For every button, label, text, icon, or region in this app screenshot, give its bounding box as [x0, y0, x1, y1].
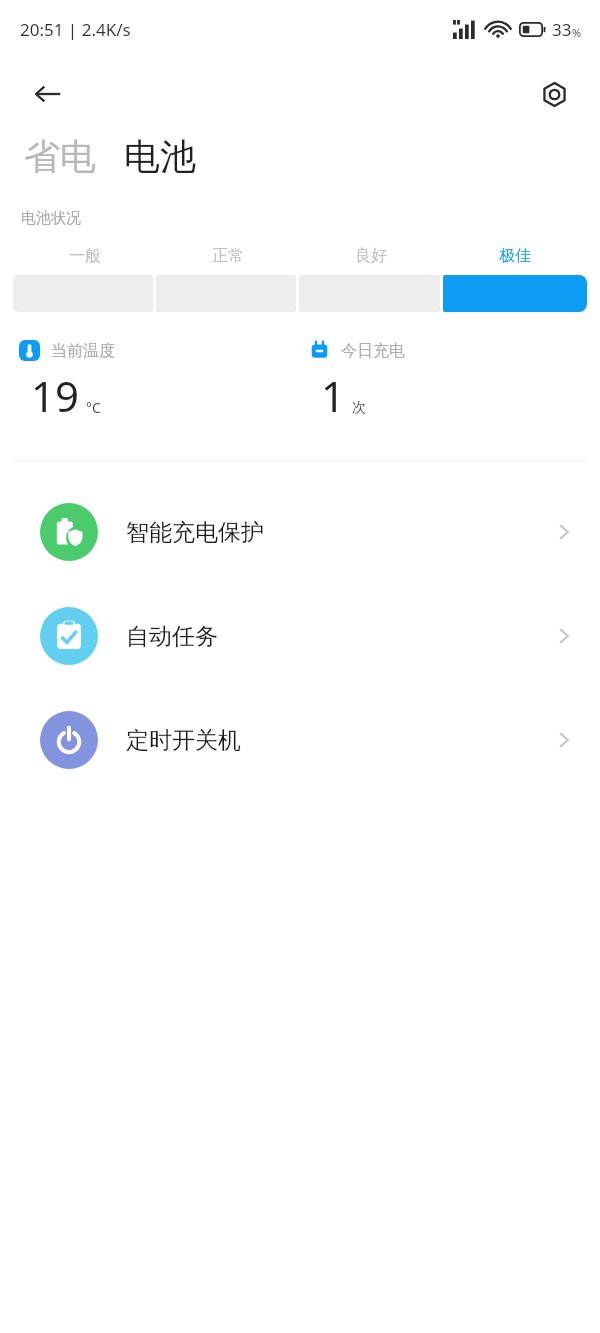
staticText: 自动任务	[126, 622, 554, 651]
staticText: 当前温度	[51, 341, 115, 361]
staticText: 正常	[212, 246, 244, 266]
staticText: 33	[552, 18, 572, 41]
staticText: 1	[321, 367, 346, 424]
button[interactable]	[443, 275, 587, 312]
button[interactable]: Back	[24, 70, 72, 118]
staticText: 20:51 | 2.4K/s	[20, 18, 131, 41]
staticText: 19	[31, 367, 80, 424]
staticText: 智能充电保护	[126, 518, 554, 547]
button[interactable]: 智能充电保护	[0, 480, 600, 584]
button[interactable]: Settings	[530, 70, 578, 118]
button[interactable]: 自动任务	[0, 584, 600, 688]
staticText: %	[572, 25, 582, 40]
button[interactable]: 定时开关机	[0, 688, 600, 792]
staticText: 良好	[355, 246, 387, 266]
staticText: °C	[86, 398, 101, 417]
button[interactable]: 省电	[20, 130, 100, 183]
staticText: 定时开关机	[126, 726, 554, 755]
staticText: 省电	[24, 134, 96, 179]
staticText: 今日充电	[341, 341, 405, 361]
staticText: 一般	[69, 246, 101, 266]
staticText: 电池	[124, 134, 196, 179]
staticText: 极佳	[499, 246, 531, 266]
staticText: 电池状况	[21, 209, 81, 228]
staticText: 次	[352, 399, 366, 417]
button[interactable]: 电池	[120, 130, 200, 183]
